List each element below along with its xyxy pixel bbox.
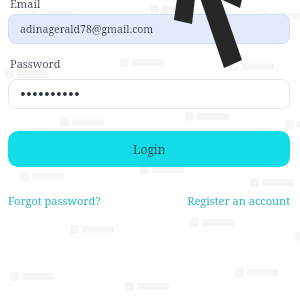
staticText: adinagerald78@gmail.com: [20, 22, 154, 36]
other: Pointer annotation: [0, 0, 300, 300]
staticText: Login: [133, 141, 166, 157]
button[interactable]: Register an account: [187, 191, 290, 210]
staticText: Email: [10, 0, 41, 10]
staticText: Password: [10, 56, 61, 71]
button[interactable]: Login: [8, 131, 290, 167]
staticText: Register an account: [187, 193, 290, 208]
button[interactable]: adinagerald78@gmail.com: [8, 14, 290, 44]
staticText: Forgot password?: [8, 193, 101, 208]
button[interactable]: [8, 79, 290, 109]
button[interactable]: Forgot password?: [8, 191, 101, 210]
